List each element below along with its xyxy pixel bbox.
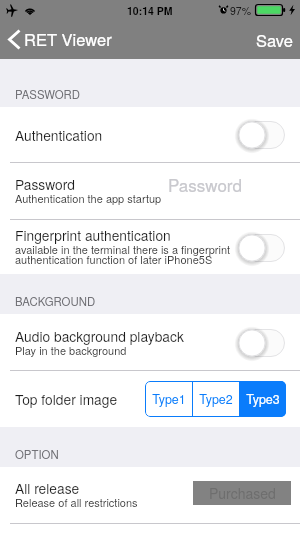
staticText: All release [15, 478, 80, 498]
staticText: Fingerprint authentication [15, 225, 171, 245]
staticText: Password [15, 174, 76, 194]
button[interactable]: Audio background playback [0, 314, 300, 370]
button[interactable]: Toggle [238, 329, 285, 357]
staticText: OPTION [15, 446, 59, 462]
button[interactable]: RET Viewer [0, 22, 122, 58]
staticText: 10:14 PM [127, 3, 173, 18]
staticText: Authentication the app startup [15, 190, 162, 206]
staticText: Password [168, 172, 242, 196]
button[interactable]: Toggle [238, 121, 285, 149]
button[interactable]: Fingerprint authentication [0, 220, 300, 274]
staticText: BACKGROUND [15, 293, 96, 309]
staticText: Authentication [15, 125, 103, 145]
staticText: Type2 [199, 390, 233, 408]
staticText: Audio background playback [15, 326, 184, 346]
staticText: PASSWORD [15, 86, 80, 102]
button[interactable]: Password [0, 163, 300, 219]
staticText: Type3 [246, 390, 280, 408]
staticText: Purchased [209, 483, 276, 503]
staticText: Type1 [152, 390, 186, 408]
staticText: available in the terminal there is a fin… [15, 241, 231, 268]
button[interactable]: Authentication [0, 107, 300, 162]
staticText: RET Viewer [24, 27, 112, 51]
button[interactable]: Type2 [193, 381, 239, 417]
button[interactable]: Type3 [240, 381, 286, 417]
staticText: Top folder image [15, 389, 118, 409]
button[interactable]: Toggle [238, 234, 285, 262]
staticText: Play in the background [15, 342, 127, 358]
staticText: 97% [230, 3, 252, 18]
staticText: Release of all restrictions [15, 494, 138, 510]
button[interactable]: Purchased [193, 481, 291, 505]
button[interactable]: Type1 [145, 381, 192, 417]
button[interactable]: Save [242, 21, 300, 59]
